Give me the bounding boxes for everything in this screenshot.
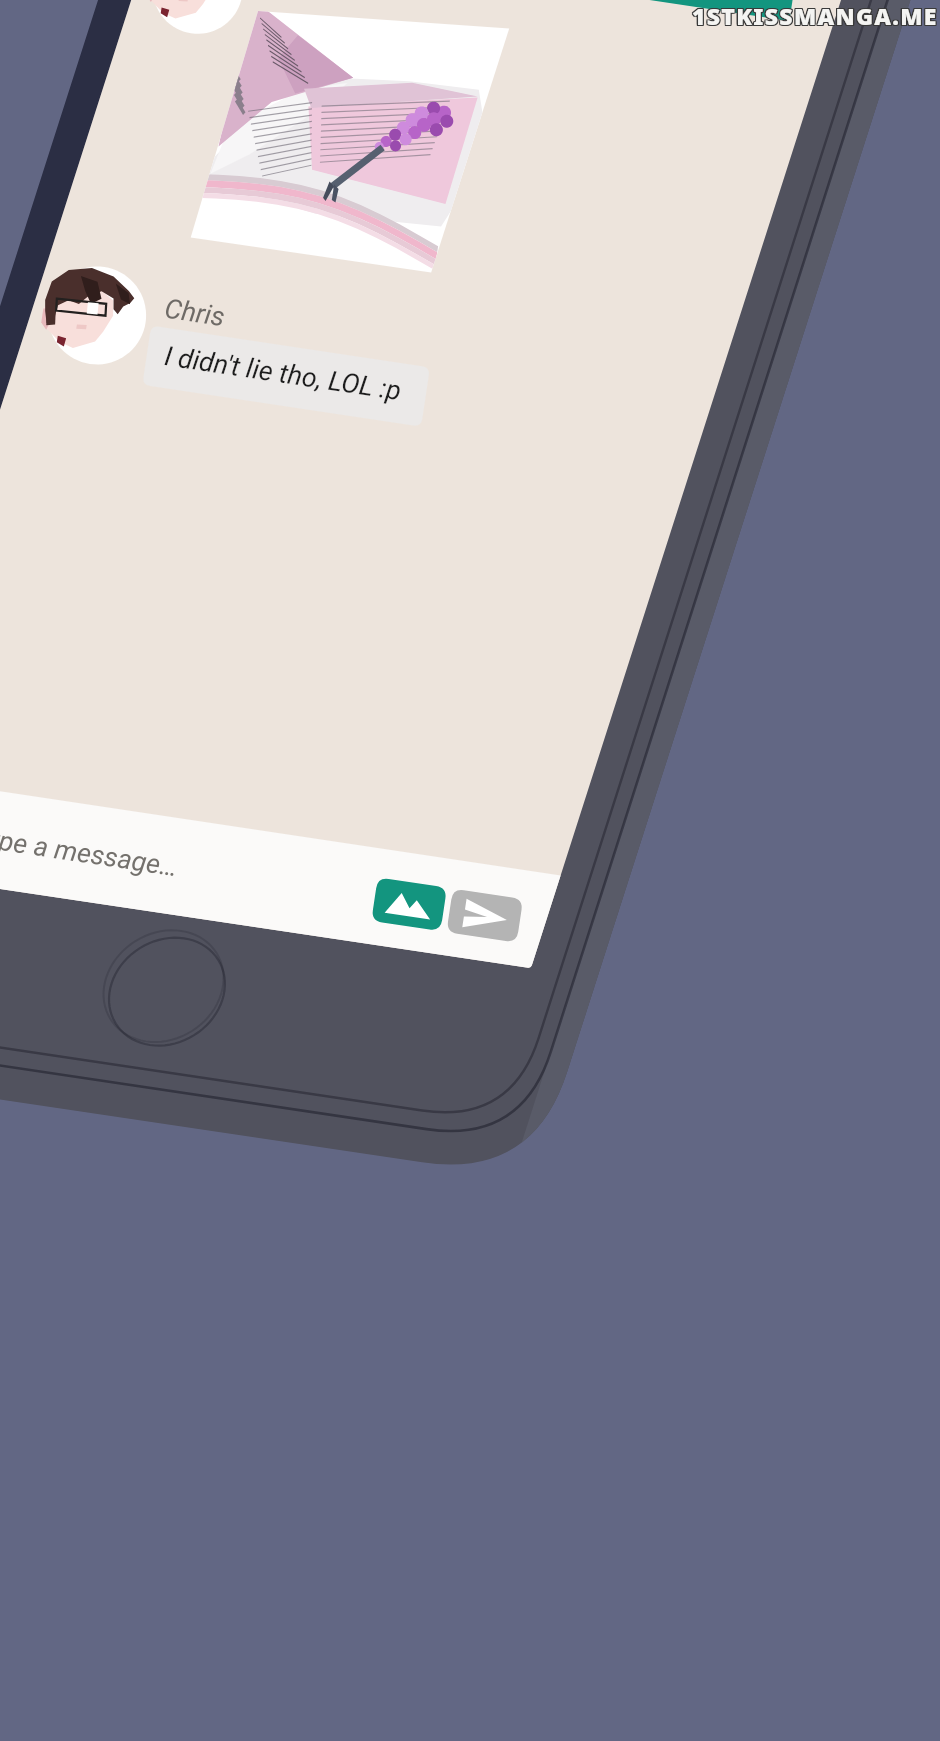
button[interactable]: Chris avatar xyxy=(48,266,150,368)
button[interactable]: Send xyxy=(444,886,526,946)
button[interactable]: Attach image xyxy=(369,874,450,934)
button[interactable]: Photo from Chris xyxy=(191,0,511,282)
button[interactable]: Chris: I didn't lie tho, LOL :p xyxy=(140,324,432,429)
button[interactable]: Home xyxy=(110,935,224,1049)
button[interactable]: Type a message xyxy=(0,758,392,1025)
button[interactable]: Conversation header xyxy=(620,0,940,24)
